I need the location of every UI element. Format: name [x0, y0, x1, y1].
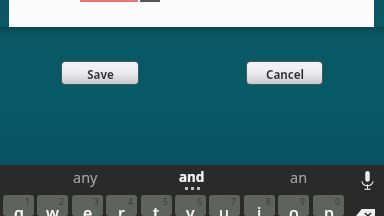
staticText: 6 — [197, 196, 202, 208]
button[interactable]: w — [37, 195, 68, 216]
staticText: p — [324, 202, 334, 216]
staticText: 9 — [300, 196, 305, 208]
staticText: 8 — [266, 196, 271, 208]
button[interactable]: p — [313, 195, 344, 216]
staticText: 2 — [59, 196, 64, 208]
button[interactable]: u — [209, 195, 240, 216]
staticText: Cancel — [266, 67, 304, 83]
button[interactable]: o — [278, 195, 309, 216]
staticText: w — [46, 202, 59, 216]
staticText: 0 — [335, 196, 340, 208]
staticText: an — [290, 167, 308, 187]
button[interactable]: Delete — [347, 195, 384, 216]
staticText: y — [186, 202, 195, 216]
button[interactable]: Save — [62, 62, 138, 84]
staticText: 5 — [163, 196, 168, 208]
button[interactable]: Cancel — [247, 62, 322, 84]
staticText: t — [153, 202, 160, 216]
staticText: i — [257, 202, 262, 216]
staticText: u — [219, 202, 230, 216]
staticText: o — [289, 202, 299, 216]
staticText: 4 — [128, 196, 133, 208]
staticText: 1 — [25, 196, 30, 208]
staticText: 7 — [231, 196, 236, 208]
staticText: 3 — [94, 196, 99, 208]
staticText: e — [83, 202, 93, 216]
staticText: and — [179, 168, 205, 186]
button[interactable]: Voice input — [350, 164, 384, 194]
button[interactable]: q — [3, 195, 34, 216]
staticText: r — [118, 202, 125, 216]
button[interactable]: e — [72, 195, 103, 216]
button[interactable]: y — [175, 195, 206, 216]
button[interactable]: t — [141, 195, 172, 216]
button[interactable]: r — [106, 195, 137, 216]
staticText: Save — [87, 67, 114, 83]
staticText: any — [73, 167, 98, 187]
staticText: q — [14, 202, 24, 216]
button[interactable]: i — [244, 195, 275, 216]
